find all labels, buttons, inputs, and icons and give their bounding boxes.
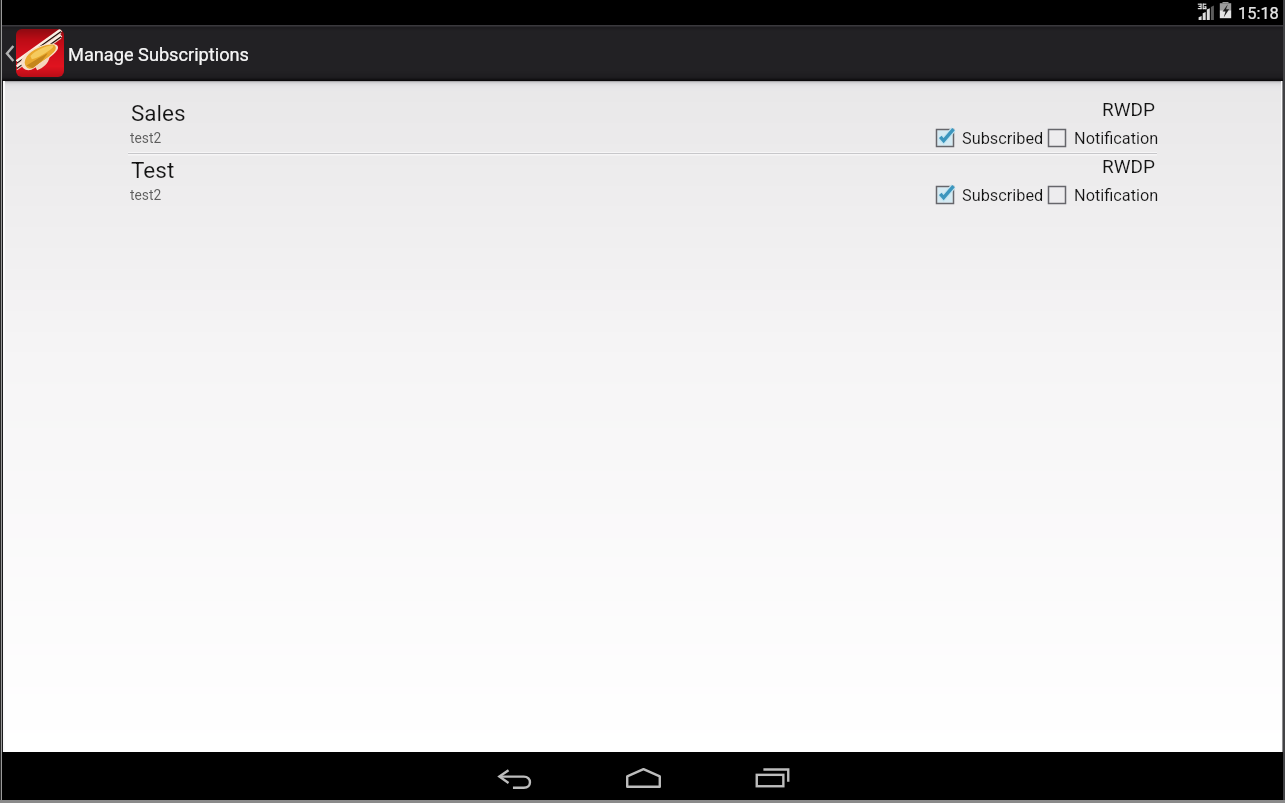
button[interactable]: Sales (0, 96, 1285, 154)
staticText: RWDP (1102, 155, 1156, 177)
button[interactable]: Home (604, 752, 680, 803)
staticText: Notification (1074, 186, 1159, 205)
button[interactable]: Subscribed (935, 184, 1044, 206)
button[interactable]: Recent apps (733, 752, 809, 803)
staticText: Subscribed (962, 129, 1044, 148)
button[interactable]: Notification (1047, 184, 1159, 206)
staticText: RWDP (1102, 98, 1156, 120)
staticText: Sales (131, 100, 186, 126)
staticText: Subscribed (962, 186, 1044, 205)
button[interactable]: Test (0, 153, 1285, 211)
button[interactable]: Back (477, 752, 553, 803)
staticText: Manage Subscriptions (68, 44, 249, 65)
button[interactable]: Notification (1047, 127, 1159, 149)
staticText: Test (131, 157, 175, 183)
staticText: Notification (1074, 129, 1159, 148)
button[interactable]: Subscribed (935, 127, 1044, 149)
staticText: 15:18 (1238, 4, 1279, 23)
staticText: test2 (130, 130, 162, 146)
staticText: test2 (130, 187, 162, 203)
button[interactable]: Navigate up — Manage Subscriptions (0, 25, 250, 81)
